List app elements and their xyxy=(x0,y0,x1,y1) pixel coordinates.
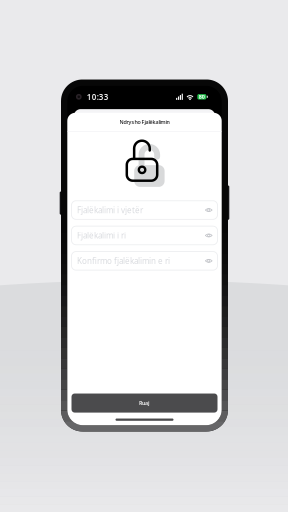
button[interactable]: Ruaj xyxy=(67,393,222,413)
button[interactable]: Konfirmo fjalëkalimin e ri xyxy=(71,252,217,270)
staticText: Ndrysho Fjalëkalimin xyxy=(119,118,169,125)
staticText: Fjalëkalimi i ri xyxy=(77,230,126,241)
staticText: 80 xyxy=(199,93,205,100)
staticText: Fjalëkalimi i vjetër xyxy=(77,205,143,215)
staticText: Ruaj xyxy=(139,399,150,407)
staticText: 10:33 xyxy=(87,91,109,102)
button[interactable]: Fjalëkalimi i ri xyxy=(71,226,217,245)
staticText: Konfirmo fjalëkalimin e ri xyxy=(77,255,170,266)
button[interactable]: Fjalëkalimi i vjetër xyxy=(71,201,217,219)
